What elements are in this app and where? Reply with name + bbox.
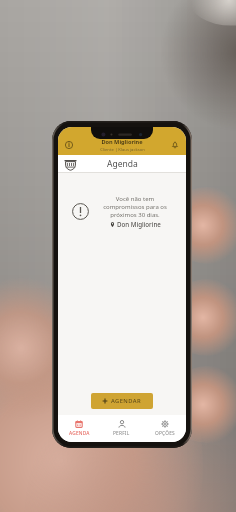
staticText: AGENDA	[69, 430, 90, 437]
staticText: Cliente | Klaus jackson	[100, 147, 145, 153]
button[interactable]: OPÇÕES	[143, 415, 186, 442]
staticText: OPÇÕES	[155, 430, 175, 437]
button[interactable]: Informações	[62, 138, 76, 152]
staticText: Agenda	[107, 158, 138, 170]
button[interactable]: AGENDAR	[91, 393, 153, 409]
button[interactable]: Notificações	[168, 138, 182, 152]
button[interactable]: PERFIL	[100, 415, 143, 442]
staticText: Don Migliorine	[101, 138, 143, 146]
button[interactable]: AGENDA	[58, 415, 100, 442]
staticText: Você não tem compromissos para os próxim…	[98, 195, 172, 219]
staticText: Don Migliorine	[117, 220, 161, 228]
staticText: AGENDAR	[111, 397, 142, 405]
button[interactable]: Logo Don Migliorine	[62, 156, 78, 172]
staticText: PERFIL	[113, 430, 130, 437]
